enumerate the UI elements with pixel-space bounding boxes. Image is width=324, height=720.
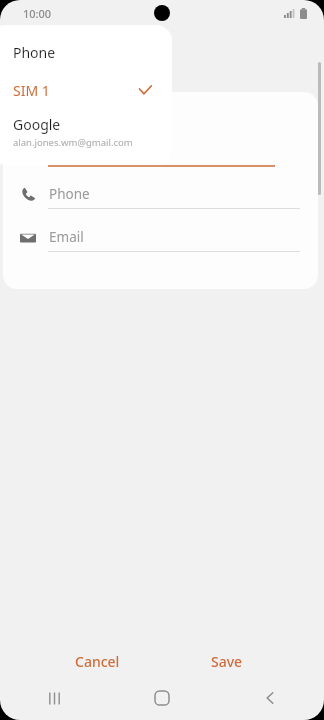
staticText: Google xyxy=(13,115,61,134)
staticText: Save xyxy=(211,652,243,671)
button[interactable]: Back xyxy=(216,676,324,720)
button[interactable]: Phone xyxy=(0,33,172,71)
button[interactable]: Phone xyxy=(3,183,318,227)
button[interactable]: Home xyxy=(108,676,216,720)
staticText: Phone xyxy=(49,185,90,203)
staticText: Email xyxy=(49,228,84,246)
staticText: alan.jones.wm@gmail.com xyxy=(13,136,133,149)
button[interactable]: Recent apps xyxy=(0,676,108,720)
button[interactable]: Google xyxy=(0,109,172,153)
staticText: SIM 1 xyxy=(13,81,50,100)
button[interactable]: Save xyxy=(194,647,260,675)
button[interactable]: Cancel xyxy=(58,647,136,675)
staticText: 10:00 xyxy=(23,6,52,21)
button[interactable]: Email xyxy=(3,226,318,270)
staticText: Cancel xyxy=(75,652,120,671)
button[interactable]: SIM 1 xyxy=(0,71,172,109)
staticText: Phone xyxy=(13,43,56,62)
